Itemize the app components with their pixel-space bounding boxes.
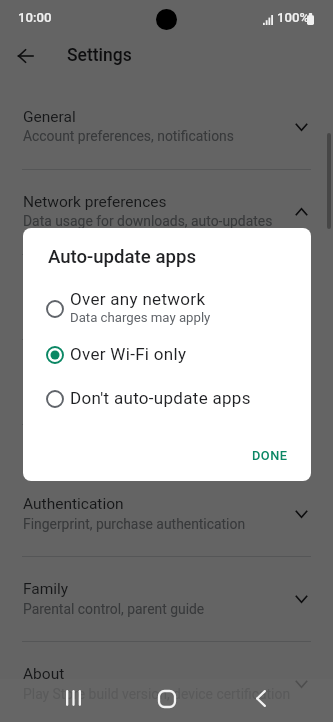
- staticText: Account preferences, notifications: [23, 128, 234, 144]
- staticText: Network preferences: [23, 193, 167, 211]
- button[interactable]: [0, 654, 333, 722]
- staticText: Fingerprint, purchase authentication: [23, 516, 246, 532]
- staticText: Parental control, parent guide: [23, 601, 205, 617]
- button[interactable]: [0, 181, 333, 254]
- staticText: About: [23, 665, 65, 683]
- staticText: Family: [23, 580, 69, 598]
- button[interactable]: Recent apps: [26, 675, 120, 722]
- staticText: Over Wi-Fi only: [23, 383, 115, 399]
- staticText: DONE: [252, 448, 288, 463]
- button[interactable]: [0, 484, 333, 557]
- button[interactable]: [23, 287, 311, 331]
- button[interactable]: [23, 377, 311, 421]
- staticText: Authentication: [23, 495, 124, 513]
- button[interactable]: [0, 569, 333, 642]
- staticText: Settings: [67, 45, 132, 66]
- button[interactable]: DONE: [233, 436, 307, 474]
- button[interactable]: Home: [120, 675, 214, 722]
- button[interactable]: [0, 351, 333, 424]
- staticText: Auto-play videos: [23, 363, 137, 381]
- button[interactable]: [0, 96, 333, 169]
- staticText: Auto-update apps: [48, 246, 197, 268]
- button[interactable]: [23, 333, 311, 377]
- staticText: General: [23, 108, 76, 126]
- staticText: Data usage for downloads, auto-updates: [23, 213, 273, 229]
- button[interactable]: [0, 266, 333, 339]
- staticText: Auto-update apps: [23, 278, 146, 296]
- staticText: Over Wi-Fi only: [23, 298, 115, 314]
- button[interactable]: Back: [213, 675, 307, 722]
- staticText: 10:00: [18, 10, 52, 25]
- staticText: Data charges may apply: [70, 310, 211, 325]
- staticText: Over Wi-Fi only: [70, 344, 187, 364]
- staticText: Don't auto-update apps: [70, 388, 251, 408]
- button[interactable]: Navigate up: [6, 36, 46, 76]
- staticText: Over any network: [70, 289, 206, 309]
- staticText: Play Store build version, device certifi…: [23, 686, 291, 702]
- staticText: 100%: [277, 10, 310, 25]
